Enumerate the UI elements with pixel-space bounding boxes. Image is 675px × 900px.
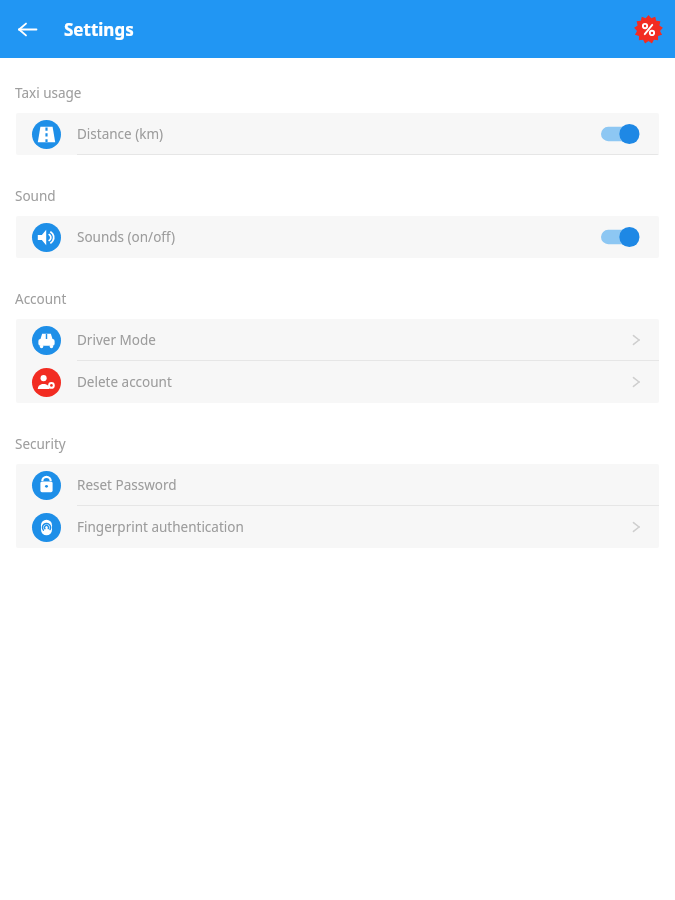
staticText: Driver Mode <box>77 331 156 349</box>
button[interactable]: Fingerprint authentication <box>16 506 659 548</box>
button[interactable]: Delete account <box>16 361 659 403</box>
staticText: Delete account <box>77 373 172 391</box>
staticText: Sounds (on/off) <box>77 228 176 246</box>
button[interactable]: Sounds (on/off) <box>16 216 659 258</box>
staticText: Fingerprint authentication <box>77 518 244 536</box>
button[interactable]: Promotions <box>628 9 668 49</box>
staticText: Settings <box>64 18 134 41</box>
button[interactable]: Driver Mode <box>16 319 659 361</box>
staticText: Security <box>15 435 66 453</box>
staticText: Taxi usage <box>15 84 82 102</box>
staticText: Sound <box>15 187 56 205</box>
staticText: Account <box>15 290 67 308</box>
staticText: Reset Password <box>77 476 177 494</box>
button[interactable]: Distance (km) <box>16 113 659 155</box>
button[interactable]: Reset Password <box>16 464 659 506</box>
staticText: Distance (km) <box>77 125 164 143</box>
button[interactable]: Back <box>8 10 46 48</box>
